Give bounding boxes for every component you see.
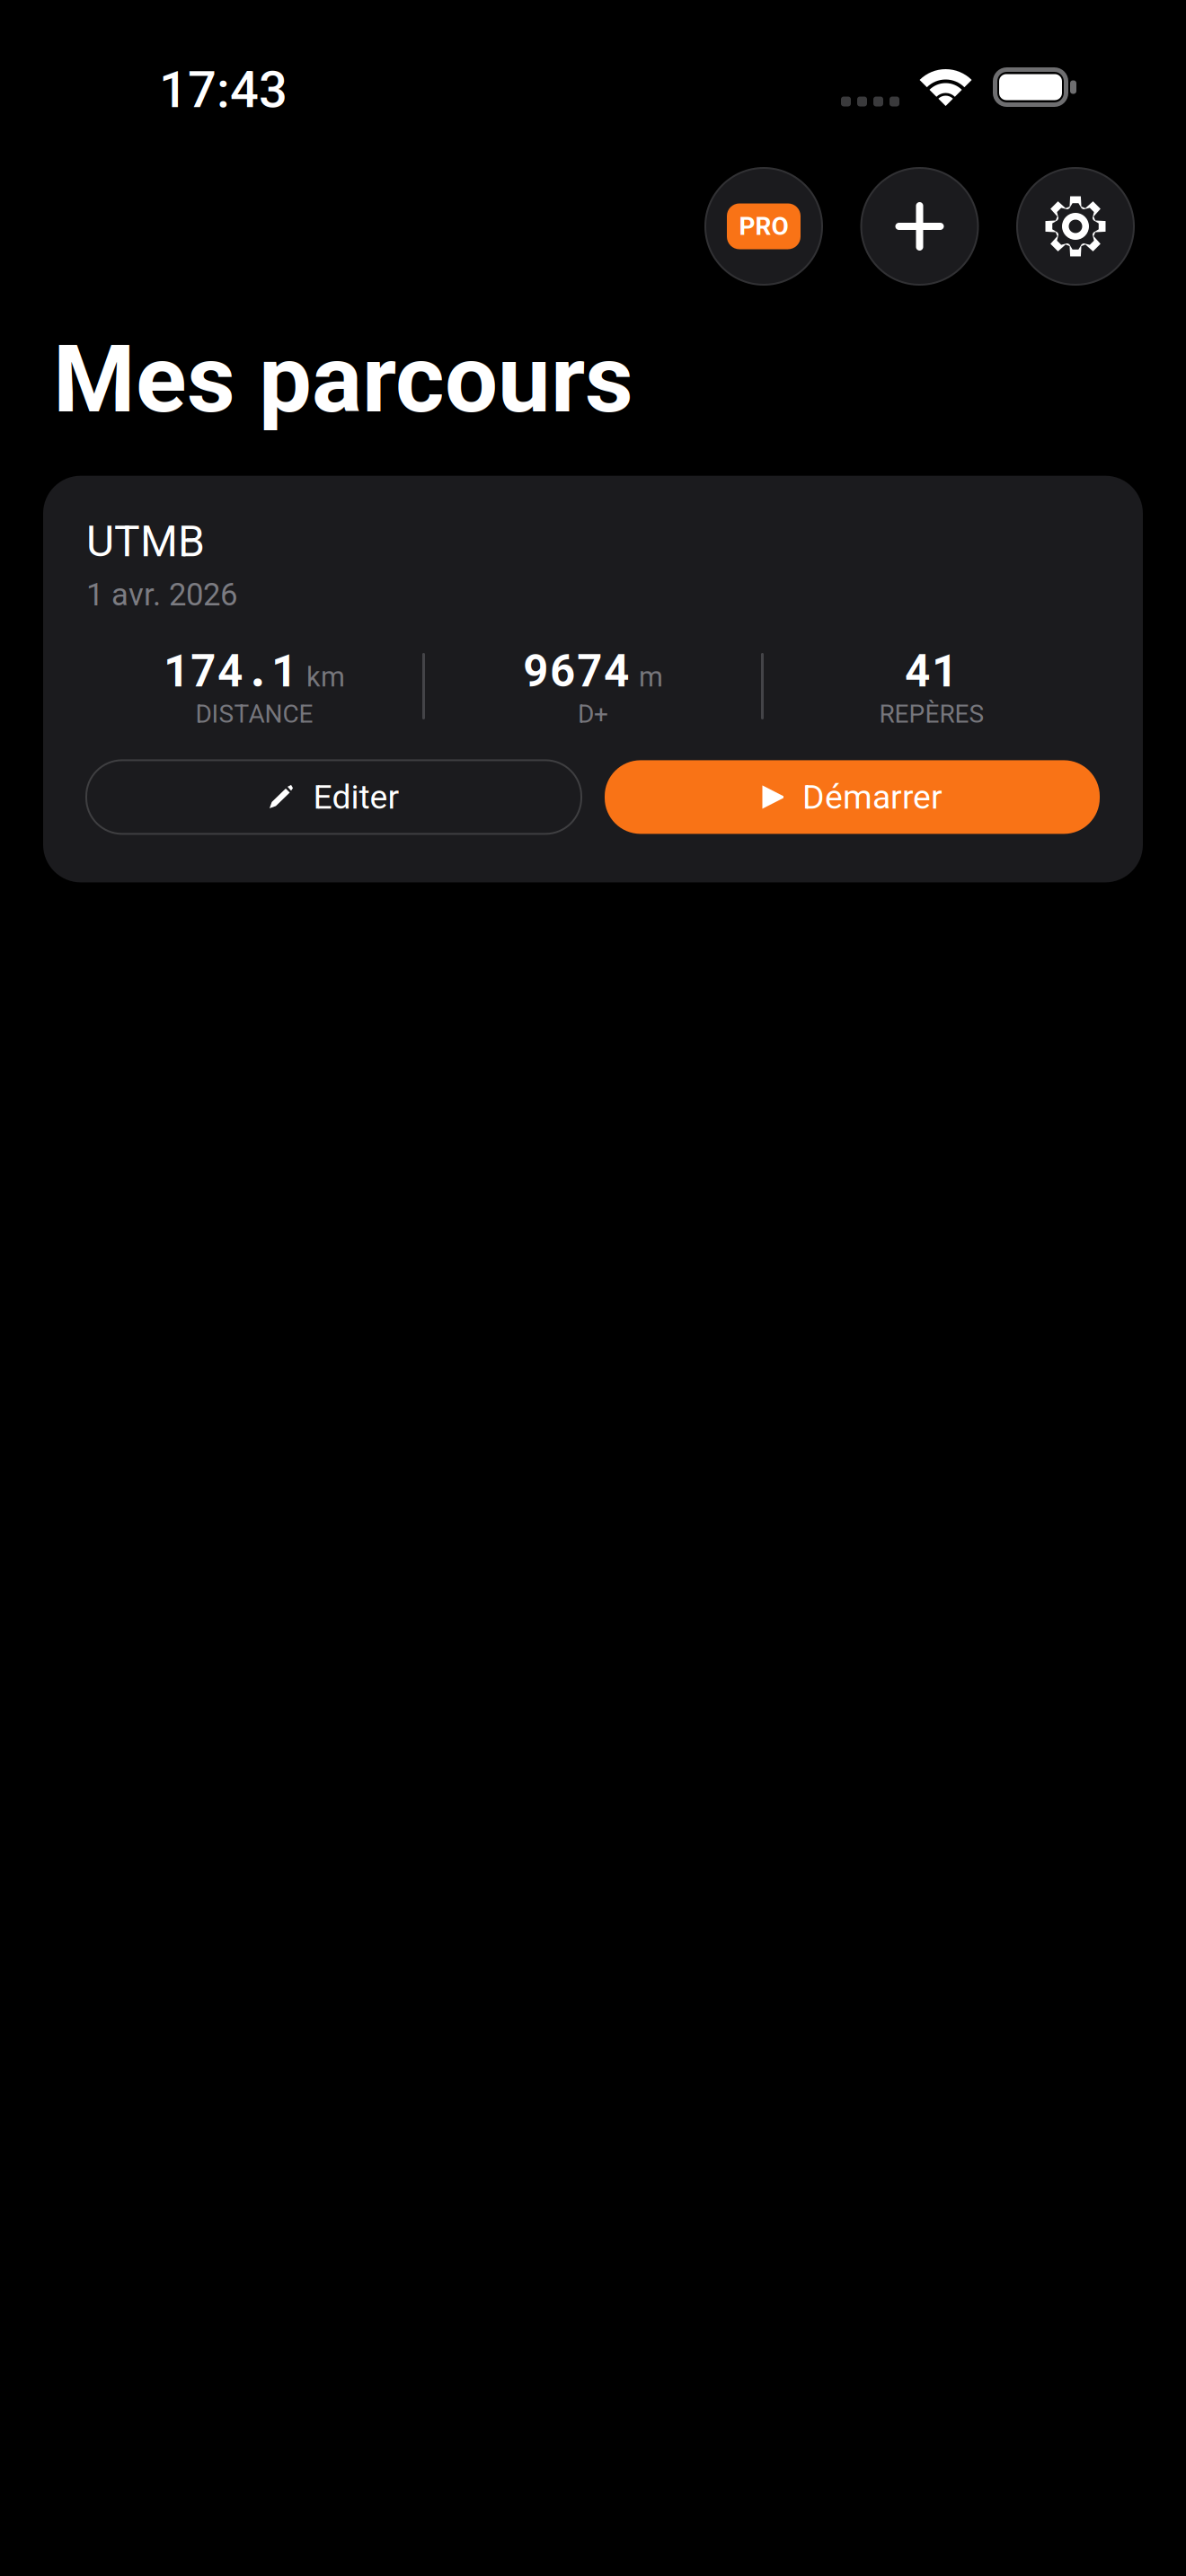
staticText: 174.1 [164, 640, 298, 698]
staticText: 41 [905, 640, 959, 698]
button[interactable]: PRO subscription [704, 167, 823, 286]
staticText: m [639, 661, 663, 693]
staticText: PRO [739, 212, 788, 241]
staticText: DISTANCE [195, 699, 313, 729]
button[interactable]: Démarrer [605, 760, 1100, 834]
staticText: 9674 [523, 640, 631, 698]
staticText: D+ [578, 699, 608, 729]
staticText: UTMB [86, 516, 205, 567]
button[interactable]: Editer [86, 760, 581, 834]
staticText: Mes parcours [53, 324, 633, 434]
button[interactable]: Settings [1016, 167, 1135, 286]
staticText: REPÈRES [879, 699, 984, 729]
staticText: Démarrer [802, 777, 943, 817]
button[interactable]: Add route [860, 167, 979, 286]
staticText: 1 avr. 2026 [86, 577, 237, 613]
staticText: km [306, 661, 345, 693]
staticText: 17:43 [159, 60, 288, 119]
staticText: Editer [313, 777, 399, 817]
